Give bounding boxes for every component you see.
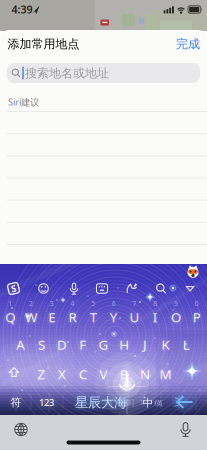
- button[interactable]: U: [124, 303, 144, 331]
- button[interactable]: V: [93, 360, 113, 388]
- button[interactable]: L: [176, 330, 196, 358]
- button[interactable]: D: [52, 330, 72, 358]
- button[interactable]: 确认: [170, 389, 200, 415]
- button[interactable]: O: [166, 303, 186, 331]
- staticText: /英: [154, 399, 163, 407]
- staticText: 123: [39, 396, 54, 409]
- staticText: N: [140, 365, 150, 383]
- button[interactable]: Shift: [1, 360, 27, 388]
- button[interactable]: 收起键盘: [181, 280, 199, 298]
- button[interactable]: 键盘布局: [93, 279, 111, 297]
- staticText: Z: [37, 365, 45, 383]
- staticText: 2: [29, 299, 33, 308]
- staticText: 1: [8, 299, 12, 308]
- staticText: T: [90, 308, 97, 326]
- staticText: 5: [91, 299, 95, 308]
- button[interactable]: 语音输入: [65, 279, 83, 297]
- staticText: 7: [132, 299, 136, 308]
- staticText: P: [193, 308, 201, 326]
- staticText: B: [120, 365, 129, 383]
- button[interactable]: X: [52, 360, 72, 388]
- button[interactable]: Q: [0, 303, 20, 331]
- button[interactable]: 中英文切换: [140, 390, 166, 416]
- staticText: U: [129, 308, 139, 326]
- button[interactable]: S: [31, 330, 51, 358]
- staticText: O: [171, 308, 181, 326]
- staticText: X: [58, 365, 66, 383]
- button[interactable]: 搜索: [152, 279, 170, 297]
- button[interactable]: 完成: [176, 37, 200, 51]
- button[interactable]: I: [145, 303, 165, 331]
- button[interactable]: A: [11, 330, 31, 358]
- button[interactable]: Z: [31, 360, 51, 388]
- staticText: H: [119, 336, 129, 353]
- button[interactable]: 搜索地名或地址: [7, 63, 200, 83]
- button[interactable]: 123: [32, 389, 60, 415]
- button[interactable]: 手写: [123, 279, 141, 297]
- button[interactable]: R: [62, 303, 82, 331]
- button[interactable]: 搜狗输入法: [4, 279, 22, 297]
- staticText: G: [98, 336, 108, 353]
- button[interactable]: C: [73, 360, 93, 388]
- button[interactable]: F: [73, 330, 93, 358]
- button[interactable]: Y: [104, 303, 124, 331]
- button[interactable]: N: [135, 360, 155, 388]
- staticText: F: [79, 336, 86, 353]
- button[interactable]: 听写: [175, 419, 195, 439]
- button[interactable]: 删除: [179, 360, 205, 388]
- button[interactable]: T: [83, 303, 103, 331]
- staticText: A: [16, 336, 25, 353]
- button[interactable]: K: [156, 330, 176, 358]
- staticText: C: [79, 365, 87, 383]
- button[interactable]: E: [42, 303, 62, 331]
- staticText: 星辰大海: [75, 394, 127, 411]
- staticText: I: [153, 308, 158, 326]
- staticText: 4:39: [11, 2, 32, 16]
- staticText: W: [25, 308, 37, 326]
- staticText: D: [57, 336, 67, 353]
- button[interactable]: J: [135, 330, 155, 358]
- staticText: K: [162, 336, 170, 353]
- staticText: 9: [174, 299, 178, 308]
- staticText: 8: [153, 299, 157, 308]
- button[interactable]: P: [187, 303, 207, 331]
- staticText: 0: [195, 299, 199, 308]
- staticText: 搜索地名或地址: [25, 66, 109, 80]
- staticText: Siri建议: [8, 96, 39, 108]
- staticText: 添加常用地点: [7, 37, 79, 51]
- staticText: 符: [10, 396, 21, 409]
- button[interactable]: H: [114, 330, 134, 358]
- staticText: E: [48, 308, 55, 326]
- staticText: R: [68, 308, 76, 326]
- button[interactable]: B: [114, 360, 134, 388]
- button[interactable]: 空格: [61, 389, 141, 415]
- button[interactable]: W: [21, 303, 41, 331]
- staticText: 完成: [176, 37, 200, 51]
- staticText: L: [183, 336, 190, 353]
- staticText: 3: [50, 299, 54, 308]
- staticText: 4: [70, 299, 74, 308]
- staticText: Q: [5, 308, 15, 326]
- button[interactable]: 下一个输入法: [11, 419, 31, 439]
- staticText: S: [11, 282, 16, 295]
- staticText: S: [38, 336, 45, 353]
- button[interactable]: 表情: [34, 279, 52, 297]
- button[interactable]: G: [93, 330, 113, 358]
- staticText: J: [143, 336, 147, 353]
- staticText: 中: [143, 396, 154, 409]
- staticText: V: [99, 365, 107, 383]
- button[interactable]: 符: [3, 389, 29, 415]
- staticText: M: [160, 365, 172, 383]
- button[interactable]: M: [156, 360, 176, 388]
- staticText: 6: [112, 299, 116, 308]
- staticText: Y: [110, 308, 118, 326]
